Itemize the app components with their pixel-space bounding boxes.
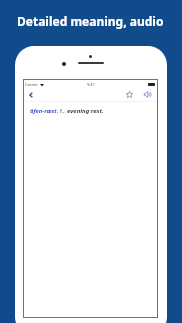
staticText: Detailed meaning, audio [17,13,164,29]
button[interactable]: Play audio pronunciation [140,87,154,101]
staticText: 9:41 [87,82,95,87]
staticText: Carrier [25,82,39,87]
staticText: evening rest. [67,107,104,115]
button[interactable]: Add to favourites [122,87,136,101]
staticText: , f., [57,107,67,115]
button[interactable]: Back [24,87,38,102]
staticText: āfen-ræst [30,107,57,115]
